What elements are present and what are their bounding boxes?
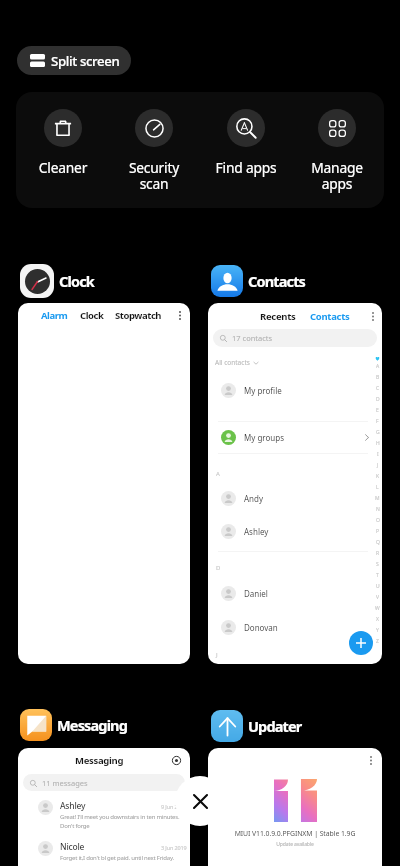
button[interactable]: Alarm — [18, 303, 190, 664]
staticText: Messaging — [75, 754, 124, 767]
staticText: K — [376, 473, 380, 480]
staticText: H — [376, 440, 380, 447]
button[interactable]: Ashley — [221, 518, 369, 544]
staticText: Stopwatch — [115, 309, 162, 322]
staticText: W — [375, 605, 380, 612]
staticText: Update available — [208, 841, 382, 848]
staticText: E — [376, 407, 379, 414]
staticText: T — [376, 572, 379, 579]
button[interactable]: My groups — [221, 424, 369, 450]
staticText: Find apps — [201, 158, 291, 177]
button[interactable]: Messaging — [18, 748, 190, 866]
staticText: I — [377, 451, 379, 458]
staticText: S — [376, 561, 379, 568]
button[interactable]: My profile — [221, 377, 369, 403]
staticText: D — [216, 564, 221, 572]
staticText: Contacts — [248, 271, 306, 291]
button[interactable]: Recents — [208, 303, 382, 664]
button[interactable]: Add contact — [349, 631, 373, 655]
staticText: N — [376, 506, 380, 513]
staticText: Donovan — [244, 622, 278, 633]
staticText: 17 contacts — [232, 333, 273, 343]
staticText: O — [376, 517, 380, 524]
button[interactable]: Split screen — [17, 46, 131, 75]
staticText: M — [375, 495, 380, 502]
staticText: G — [376, 429, 380, 436]
button[interactable]: Cleaner — [18, 92, 108, 177]
button[interactable]: Contacts — [211, 265, 306, 297]
button[interactable]: Nicole — [38, 841, 187, 862]
button[interactable]: Close all — [175, 776, 225, 826]
staticText: C — [376, 385, 380, 392]
staticText: Nicole — [60, 841, 85, 853]
staticText: Z — [376, 638, 379, 645]
staticText: Cleaner — [18, 158, 108, 177]
staticText: Clock — [59, 271, 94, 291]
button[interactable]: Andy — [221, 485, 369, 511]
button[interactable]: 17 contacts — [213, 329, 377, 347]
staticText: Ashley — [244, 526, 269, 537]
staticText: L — [376, 484, 379, 491]
button[interactable]: Messaging — [20, 709, 128, 741]
button[interactable]: Find apps — [201, 92, 291, 177]
button[interactable]: Donovan — [221, 614, 369, 640]
staticText: J — [216, 651, 218, 659]
staticText: A — [216, 470, 220, 478]
staticText: U — [376, 583, 380, 590]
staticText: Split screen — [51, 52, 120, 70]
staticText: MIUI V11.0.9.0.PFGINXM | Stable 1.9G — [208, 829, 382, 838]
button[interactable]: Clock — [20, 264, 94, 298]
staticText: X — [376, 616, 379, 623]
button[interactable]: 11 messages — [23, 774, 185, 791]
staticText: All contacts — [215, 358, 250, 367]
button[interactable]: Ashley — [38, 800, 187, 829]
staticText: Security scan — [109, 158, 199, 193]
button[interactable]: Updater — [211, 710, 302, 742]
staticText: Alarm — [41, 309, 68, 322]
button[interactable]: Security scan — [109, 92, 199, 193]
staticText: Forget it,I don't bl get paid. until nex… — [60, 854, 174, 862]
staticText: P — [376, 528, 380, 535]
staticText: Contacts — [310, 310, 350, 323]
button[interactable]: MIUI V11.0.9.0.PFGINXM | Stable 1.9G — [208, 748, 382, 866]
staticText: Updater — [248, 716, 302, 736]
button[interactable]: Daniel — [221, 580, 369, 606]
staticText: J — [377, 462, 379, 469]
staticText: Recents — [260, 310, 296, 323]
staticText: V — [376, 594, 380, 601]
button[interactable]: Manage apps — [292, 92, 382, 193]
staticText: Ashley — [60, 800, 86, 812]
staticText: Daniel — [244, 588, 268, 599]
staticText: F — [376, 418, 379, 425]
staticText: Manage apps — [292, 158, 382, 193]
staticText: Messaging — [57, 715, 128, 735]
staticText: 3 Jun 2019 — [161, 844, 187, 851]
staticText: Great! I'll meet you downstairs in ten m… — [60, 813, 180, 829]
staticText: 9 Jun 2019 — [161, 803, 187, 810]
staticText: Andy — [244, 493, 264, 504]
staticText: My groups — [244, 432, 285, 443]
staticText: 11 messages — [42, 778, 88, 788]
staticText: Y — [376, 627, 379, 634]
staticText: B — [376, 374, 380, 381]
staticText: Q — [376, 539, 380, 546]
staticText: My profile — [244, 385, 282, 396]
staticText: Clock — [80, 309, 104, 322]
staticText: A — [376, 363, 380, 370]
button[interactable]: All contacts — [215, 358, 259, 367]
staticText: R — [376, 550, 380, 557]
staticText: D — [376, 396, 380, 403]
